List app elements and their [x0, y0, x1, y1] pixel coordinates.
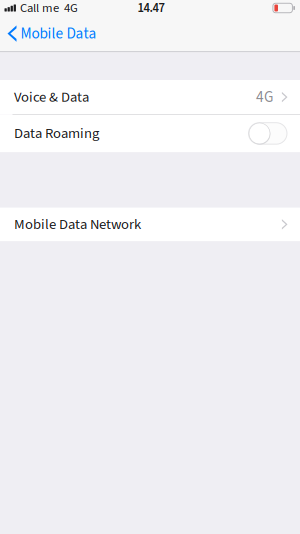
- staticText: Call me: [20, 0, 59, 17]
- button[interactable]: Voice & Data: [0, 80, 300, 114]
- staticText: 14.47: [137, 0, 164, 17]
- staticText: Voice & Data: [14, 87, 89, 108]
- button[interactable]: Mobile Data Network: [0, 208, 300, 241]
- staticText: Mobile Data: [20, 23, 96, 44]
- button[interactable]: Data Roaming: [0, 115, 300, 152]
- button[interactable]: Mobile Data: [0, 23, 96, 44]
- staticText: 4G: [256, 86, 273, 108]
- staticText: 4G: [64, 0, 78, 17]
- staticText: Data Roaming: [14, 123, 99, 144]
- staticText: Mobile Data Network: [14, 214, 141, 235]
